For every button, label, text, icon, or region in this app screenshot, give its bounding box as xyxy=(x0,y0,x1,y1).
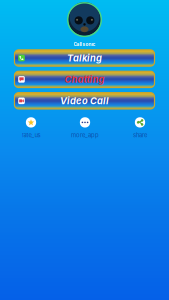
button[interactable]: Talking xyxy=(14,50,154,66)
staticText: Call sonic xyxy=(73,41,95,47)
button[interactable]: Video Call xyxy=(14,93,154,109)
staticText: rate_us xyxy=(21,132,40,139)
button[interactable]: more_app xyxy=(61,117,109,141)
staticText: Chatting xyxy=(64,74,104,85)
staticText: Video Call xyxy=(60,95,109,106)
staticText: share xyxy=(133,132,147,139)
button[interactable]: share xyxy=(116,117,164,141)
staticText: Talking xyxy=(67,52,102,64)
staticText: more_app xyxy=(71,132,99,139)
button[interactable]: rate_us xyxy=(7,117,55,141)
button[interactable]: Chatting xyxy=(14,71,154,87)
